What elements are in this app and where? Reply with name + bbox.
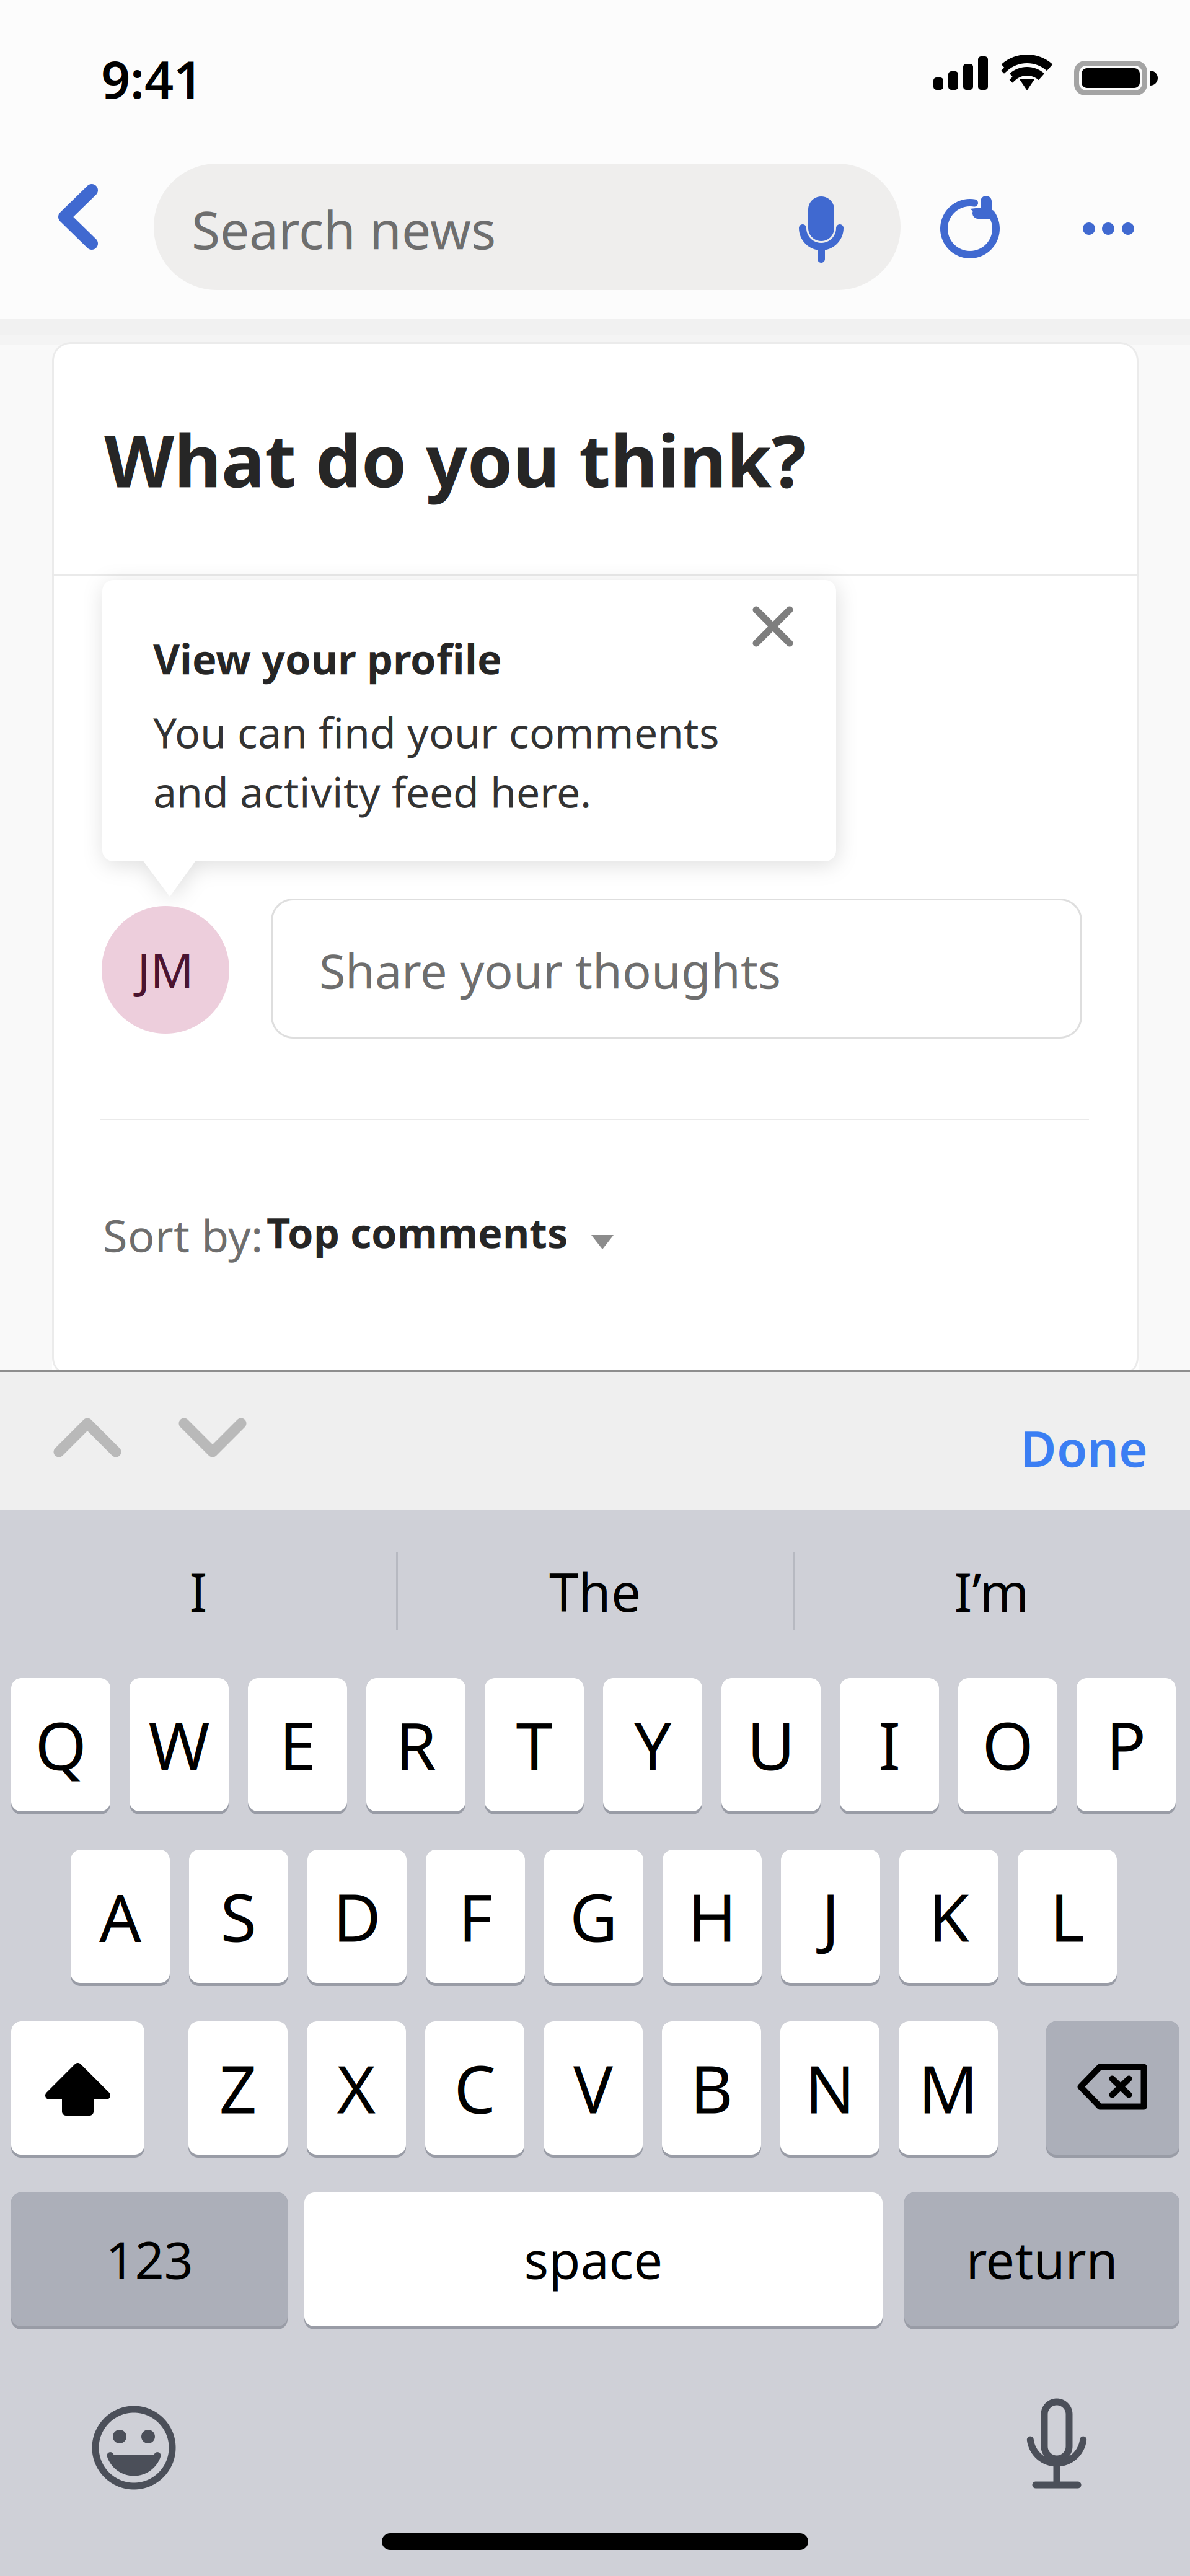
button[interactable]: N (780, 2021, 879, 2158)
staticText: Y (634, 1701, 671, 1788)
button[interactable]: X (307, 2021, 406, 2158)
staticText: X (337, 2044, 376, 2132)
staticText: Z (219, 2044, 257, 2132)
staticText: 9:41 (101, 45, 203, 113)
staticText: H (688, 1872, 737, 1960)
button[interactable]: Dictate (1026, 2397, 1119, 2502)
button[interactable]: Search news (154, 164, 901, 290)
button[interactable]: 123 (11, 2192, 288, 2329)
staticText: V (573, 2044, 613, 2132)
button[interactable]: Delete (1046, 2021, 1179, 2158)
button[interactable]: O (958, 1678, 1057, 1814)
button[interactable]: J (781, 1850, 880, 1986)
staticText: E (279, 1701, 316, 1788)
button[interactable]: Y (603, 1678, 702, 1814)
staticText: S (220, 1872, 257, 1960)
button[interactable]: Shift (11, 2021, 144, 2158)
staticText: JM (137, 937, 194, 1001)
button[interactable]: Back (58, 178, 151, 277)
staticText: View your profile (153, 631, 502, 686)
button[interactable]: space (304, 2192, 883, 2329)
staticText: F (458, 1872, 492, 1960)
button[interactable]: F (426, 1850, 525, 1986)
button[interactable]: Next field (180, 1406, 267, 1480)
staticText: and activity feed here. (153, 763, 591, 819)
button[interactable]: K (899, 1850, 998, 1986)
button[interactable]: M (899, 2021, 998, 2158)
staticText: O (982, 1701, 1034, 1788)
button[interactable]: return (904, 2192, 1179, 2329)
staticText: What do you think? (104, 411, 806, 507)
staticText: The (549, 1556, 641, 1626)
staticText: N (805, 2044, 855, 2132)
button[interactable]: Close (742, 596, 804, 657)
staticText: I (189, 1556, 207, 1626)
button[interactable]: Done (1013, 1393, 1174, 1486)
button[interactable]: Z (188, 2021, 288, 2158)
button[interactable]: I (840, 1678, 939, 1814)
button[interactable]: A (71, 1850, 170, 1986)
button[interactable]: C (425, 2021, 524, 2158)
staticText: D (333, 1872, 381, 1960)
button[interactable]: I’m (868, 1542, 1116, 1641)
staticText: Done (1020, 1415, 1148, 1481)
staticText: U (747, 1701, 795, 1788)
button[interactable]: I (74, 1542, 322, 1641)
button[interactable]: Emoji keyboard (84, 2398, 183, 2497)
staticText: W (148, 1701, 210, 1788)
staticText: B (690, 2044, 733, 2132)
button[interactable]: Refresh (927, 185, 1013, 272)
staticText: I (878, 1701, 901, 1788)
button[interactable]: U (721, 1678, 821, 1814)
button[interactable]: G (544, 1850, 643, 1986)
staticText: A (99, 1872, 141, 1960)
staticText: I’m (954, 1556, 1029, 1626)
button[interactable]: The (471, 1542, 719, 1641)
staticText: Sort by: (103, 1205, 263, 1265)
button[interactable]: P (1077, 1678, 1176, 1814)
staticText: C (454, 2044, 496, 2132)
staticText: You can find your comments (153, 704, 720, 760)
button[interactable]: H (663, 1850, 762, 1986)
staticText: K (928, 1872, 969, 1960)
staticText: Search news (192, 195, 496, 264)
button[interactable]: E (248, 1678, 347, 1814)
staticText: Share your thoughts (319, 938, 781, 1002)
staticText: return (966, 2225, 1118, 2293)
staticText: G (570, 1872, 618, 1960)
staticText: R (395, 1701, 436, 1788)
button[interactable]: Sort by: (99, 1190, 645, 1289)
button[interactable]: W (130, 1678, 229, 1814)
button[interactable]: V (544, 2021, 643, 2158)
staticText: T (516, 1701, 553, 1788)
staticText: space (524, 2225, 663, 2293)
button[interactable]: More options (1075, 195, 1156, 263)
button[interactable]: Previous field (55, 1406, 141, 1480)
staticText: P (1106, 1701, 1146, 1788)
button[interactable]: S (189, 1850, 288, 1986)
button[interactable]: D (307, 1850, 407, 1986)
button[interactable]: Share your thoughts (271, 899, 1082, 1039)
staticText: Top comments (267, 1205, 568, 1259)
staticText: L (1050, 1872, 1085, 1960)
staticText: M (918, 2044, 978, 2132)
button[interactable]: Q (11, 1678, 110, 1814)
button[interactable]: T (485, 1678, 584, 1814)
button[interactable]: R (366, 1678, 465, 1814)
staticText: 123 (106, 2225, 193, 2293)
button[interactable]: L (1018, 1850, 1117, 1986)
button[interactable]: B (662, 2021, 761, 2158)
staticText: J (822, 1872, 840, 1960)
staticText: Q (35, 1701, 86, 1788)
